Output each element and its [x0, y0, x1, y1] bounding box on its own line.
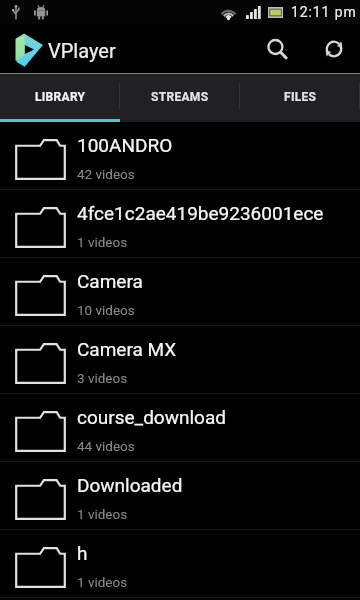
- button[interactable]: h: [0, 530, 360, 598]
- staticText: 1 videos: [77, 506, 128, 522]
- button[interactable]: Refresh: [314, 24, 354, 74]
- staticText: h: [77, 542, 88, 564]
- staticText: Camera MX: [77, 338, 177, 360]
- staticText: Camera: [77, 270, 143, 292]
- staticText: 10 videos: [77, 302, 135, 318]
- button[interactable]: Search: [257, 24, 297, 74]
- staticText: LIBRARY: [35, 90, 86, 104]
- staticText: 44 videos: [77, 438, 135, 454]
- staticText: 1 videos: [77, 234, 128, 250]
- staticText: 1 videos: [77, 574, 128, 590]
- staticText: 100ANDRO: [77, 134, 173, 156]
- staticText: 3 videos: [77, 370, 128, 386]
- button[interactable]: Downloaded: [0, 462, 360, 530]
- button[interactable]: FILES: [240, 74, 360, 122]
- button[interactable]: LIBRARY: [0, 74, 120, 122]
- button[interactable]: STREAMS: [120, 74, 240, 122]
- staticText: STREAMS: [151, 90, 209, 104]
- staticText: VPlayer: [48, 39, 116, 62]
- staticText: course_download: [77, 406, 226, 428]
- staticText: FILES: [284, 90, 317, 104]
- staticText: 12:11 pm: [291, 4, 357, 20]
- button[interactable]: Camera: [0, 258, 360, 326]
- button[interactable]: Camera MX: [0, 326, 360, 394]
- button[interactable]: 4fce1c2ae419be9236001ece: [0, 190, 360, 258]
- staticText: 42 videos: [77, 166, 135, 182]
- staticText: Downloaded: [77, 474, 183, 496]
- button[interactable]: 100ANDRO: [0, 122, 360, 190]
- staticText: 4fce1c2ae419be9236001ece: [77, 202, 324, 224]
- button[interactable]: course_download: [0, 394, 360, 462]
